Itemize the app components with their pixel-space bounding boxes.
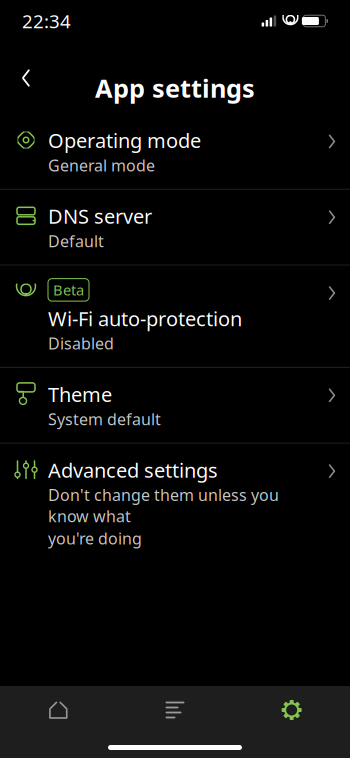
staticText: Don't change them unless you know what: [48, 484, 279, 527]
staticText: Default: [48, 230, 104, 252]
staticText: Disabled: [48, 333, 114, 354]
button[interactable]: Activity log: [117, 688, 233, 732]
staticText: you're doing: [48, 528, 142, 549]
button[interactable]: Home: [0, 688, 117, 732]
button[interactable]: Back: [6, 61, 46, 95]
staticText: Advanced settings: [48, 457, 218, 483]
staticText: System default: [48, 408, 161, 430]
button[interactable]: Theme: [0, 368, 350, 443]
button[interactable]: Beta: [0, 266, 350, 367]
button[interactable]: Advanced settings: [0, 444, 350, 562]
staticText: DNS server: [48, 203, 152, 229]
staticText: Beta: [53, 280, 84, 300]
staticText: Operating mode: [48, 127, 201, 154]
button[interactable]: Settings: [233, 688, 350, 732]
staticText: Theme: [48, 381, 112, 407]
staticText: 22:34: [22, 9, 71, 33]
button[interactable]: DNS server: [0, 190, 350, 265]
staticText: General mode: [48, 155, 155, 176]
staticText: App settings: [95, 71, 255, 105]
button[interactable]: Operating mode: [0, 114, 350, 189]
staticText: Wi-Fi auto-protection: [48, 305, 242, 332]
